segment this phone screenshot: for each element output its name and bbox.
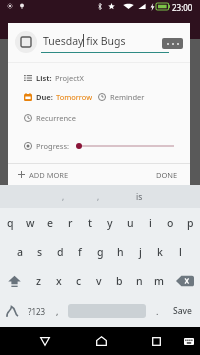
staticText: ProjectX <box>55 73 84 83</box>
staticText: r <box>68 216 73 230</box>
button[interactable]: ?123 <box>24 296 50 326</box>
staticText: s <box>37 245 43 259</box>
button[interactable]: l <box>170 238 190 266</box>
button[interactable]: i <box>140 208 160 238</box>
button[interactable]: Tuesday fix Bugs <box>43 34 165 49</box>
staticText: b <box>116 274 123 288</box>
button[interactable]: Home <box>90 327 112 355</box>
button[interactable]: j <box>130 238 150 266</box>
button[interactable]: m <box>149 266 169 296</box>
staticText: w <box>26 216 35 230</box>
staticText: k <box>157 245 163 259</box>
staticText: l <box>179 245 182 259</box>
button[interactable]: Due: <box>24 89 93 105</box>
staticText: d <box>57 245 64 259</box>
button[interactable]: t <box>80 208 100 238</box>
button[interactable]: s <box>30 238 50 266</box>
button[interactable]: q <box>0 208 20 238</box>
button[interactable]: ADD MORE <box>8 164 79 185</box>
button[interactable]: f <box>70 238 90 266</box>
staticText: e <box>47 216 54 230</box>
button[interactable]: Recurrence <box>8 110 190 125</box>
staticText: Reminder <box>110 92 145 102</box>
button[interactable]: Emoji <box>0 296 24 326</box>
button[interactable]: Recent apps <box>145 327 167 355</box>
staticText: v <box>96 274 102 288</box>
staticText: o <box>167 216 174 230</box>
staticText: ?123 <box>28 306 46 317</box>
button[interactable]: r <box>60 208 80 238</box>
staticText: 23:00 <box>172 2 193 13</box>
staticText: u <box>127 216 134 230</box>
staticText: a <box>17 245 24 259</box>
staticText: Tomorrow <box>56 92 93 102</box>
button[interactable]: o <box>160 208 180 238</box>
button[interactable]: Shift <box>0 266 29 296</box>
staticText: x <box>56 274 62 288</box>
staticText: is <box>136 191 143 203</box>
button[interactable]: Progress slider <box>76 138 176 153</box>
button[interactable]: a <box>10 238 30 266</box>
button[interactable]: d <box>50 238 70 266</box>
button[interactable]: Save <box>164 296 200 326</box>
staticText: , <box>56 305 59 317</box>
staticText: Save <box>173 305 192 317</box>
button[interactable]: More options <box>162 38 183 49</box>
button[interactable]: v <box>89 266 109 296</box>
button[interactable]: Reminder <box>98 89 145 105</box>
button[interactable]: DONE <box>144 164 190 185</box>
button[interactable]: Switch keyboard <box>178 327 200 355</box>
staticText: f <box>78 245 82 259</box>
button[interactable]: e <box>40 208 60 238</box>
button[interactable]: , <box>50 296 64 326</box>
staticText: q <box>7 216 14 230</box>
button[interactable]: w <box>20 208 40 238</box>
staticText: z <box>36 274 42 288</box>
staticText: Due: <box>36 92 53 102</box>
button[interactable]: n <box>129 266 149 296</box>
button[interactable]: b <box>109 266 129 296</box>
staticText: c <box>76 274 82 288</box>
staticText: j <box>139 245 142 259</box>
button[interactable]: c <box>69 266 89 296</box>
button[interactable]: g <box>90 238 110 266</box>
button[interactable]: Back <box>34 327 56 355</box>
staticText: Recurrence <box>36 113 76 123</box>
button[interactable]: h <box>110 238 130 266</box>
staticText: i <box>149 216 152 230</box>
staticText: h <box>117 245 124 259</box>
staticText: Progress: <box>36 141 70 151</box>
staticText: , <box>62 191 65 202</box>
staticText: t <box>88 216 93 230</box>
button[interactable]: . <box>150 296 164 326</box>
staticText: Tuesday fix Bugs <box>43 34 126 48</box>
button[interactable]: is <box>120 185 158 208</box>
button[interactable]: Backspace <box>169 266 200 296</box>
button[interactable]: z <box>29 266 49 296</box>
staticText: . <box>156 305 159 317</box>
button[interactable]: Mark complete <box>15 31 37 53</box>
button[interactable]: List: <box>8 70 190 85</box>
staticText: List: <box>36 73 52 83</box>
button[interactable]: u <box>120 208 140 238</box>
button[interactable]: k <box>150 238 170 266</box>
button[interactable]: y <box>100 208 120 238</box>
staticText: y <box>107 216 113 230</box>
staticText: ADD MORE <box>29 170 69 180</box>
button[interactable]: x <box>49 266 69 296</box>
button[interactable]: p <box>180 208 200 238</box>
staticText: n <box>136 274 143 288</box>
staticText: , <box>97 191 100 202</box>
staticText: DONE <box>156 170 178 180</box>
staticText: m <box>154 274 164 288</box>
staticText: p <box>187 216 194 230</box>
staticText: g <box>97 245 104 259</box>
